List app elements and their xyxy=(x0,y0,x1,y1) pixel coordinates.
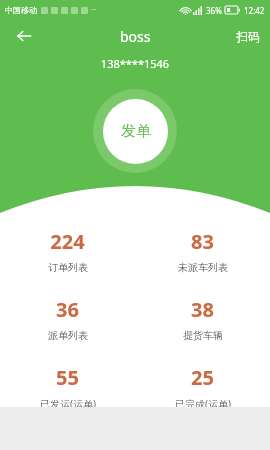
staticText: boss xyxy=(120,27,151,46)
staticText: 提货车辆 xyxy=(183,329,223,342)
staticText: 派单列表 xyxy=(48,329,88,342)
button[interactable]: 83 xyxy=(135,222,270,280)
staticText: 36 xyxy=(56,296,79,323)
button[interactable]: 发单 xyxy=(93,89,177,173)
button[interactable]: 25 xyxy=(135,358,270,417)
staticText: 已发运(运单) xyxy=(40,397,96,411)
staticText: 138****1546 xyxy=(0,56,270,71)
button[interactable]: 扫码 xyxy=(226,23,270,50)
staticText: 12:42 xyxy=(244,5,265,16)
staticText: 中国移动 xyxy=(5,5,37,15)
button[interactable]: 36 xyxy=(0,290,135,348)
staticText: 83 xyxy=(191,228,214,255)
staticText: 发单 xyxy=(121,122,151,141)
staticText: 38 xyxy=(191,296,214,323)
staticText: 224 xyxy=(50,228,85,255)
staticText: 25 xyxy=(191,364,214,391)
button[interactable]: 55 xyxy=(0,358,135,417)
button[interactable]: Back xyxy=(8,20,40,52)
staticText: 扫码 xyxy=(236,29,260,44)
staticText: 36% xyxy=(206,5,222,16)
staticText: 已完成(运单) xyxy=(175,397,231,411)
staticText: 订单列表 xyxy=(48,261,88,274)
staticText: 55 xyxy=(56,364,79,391)
staticText: 未派车列表 xyxy=(178,261,228,274)
button[interactable]: 38 xyxy=(135,290,270,348)
staticText: ··· xyxy=(91,5,97,15)
button[interactable]: 224 xyxy=(0,222,135,280)
